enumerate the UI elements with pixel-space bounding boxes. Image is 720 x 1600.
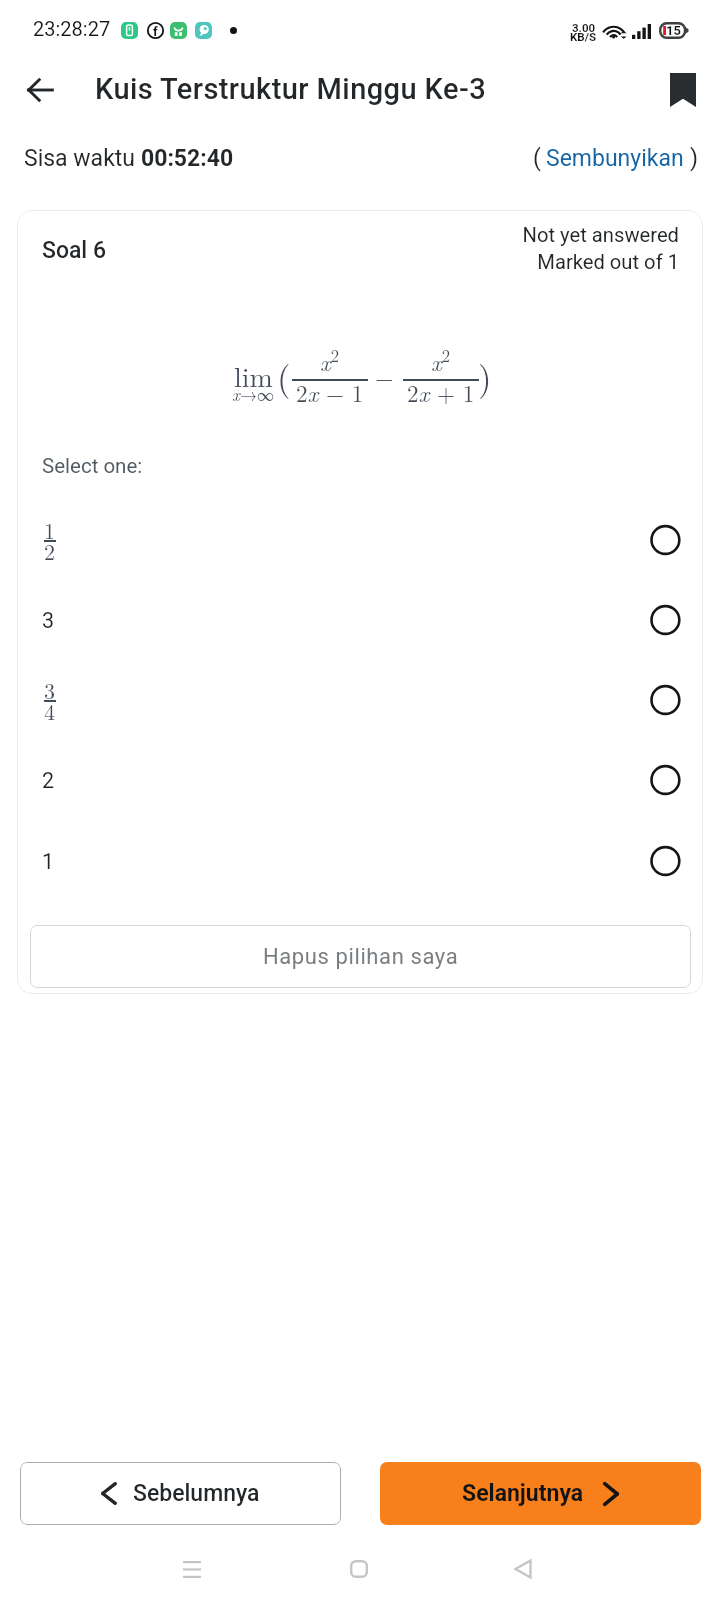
staticText: 3 <box>44 674 56 705</box>
staticText: Sebelumnya <box>133 1480 260 1507</box>
staticText: 2x + 1 <box>407 376 475 409</box>
button[interactable]: Sembunyikan <box>541 145 690 172</box>
staticText: 23:28:27 <box>33 17 111 40</box>
staticText: Selanjutnya <box>462 1480 584 1507</box>
button[interactable]: Bookmark <box>655 62 711 118</box>
staticText: ( <box>533 145 541 172</box>
staticText: 3.00 <box>572 21 596 34</box>
staticText: x2 <box>320 343 340 378</box>
staticText: f <box>153 24 158 39</box>
button[interactable]: Sebelumnya <box>20 1462 341 1525</box>
button[interactable]: 2 <box>17 740 703 820</box>
button[interactable]: 1 <box>17 821 703 901</box>
staticText: x→∞ <box>232 382 274 406</box>
button[interactable]: Back <box>12 62 68 118</box>
button[interactable]: Home <box>319 1529 399 1600</box>
button[interactable]: 1 <box>17 500 703 580</box>
staticText: Sisa waktu <box>24 145 141 172</box>
staticText: ) <box>690 145 699 172</box>
staticText: 3 <box>42 608 55 633</box>
staticText: 15 <box>666 23 681 38</box>
staticText: 1 <box>42 849 55 874</box>
staticText: Not yet answered Marked out of 1 <box>522 223 679 274</box>
staticText: 2 <box>42 768 55 793</box>
button[interactable]: 3 <box>17 660 703 740</box>
staticText: Select one: <box>42 454 143 478</box>
staticText: KB/S <box>570 30 596 43</box>
staticText: 00:52:40 <box>141 145 234 172</box>
staticText: 4 <box>44 695 56 726</box>
button[interactable]: Back <box>483 1529 563 1600</box>
staticText: Sembunyikan <box>546 145 684 172</box>
staticText: Soal 6 <box>42 237 107 264</box>
staticText: ) <box>478 351 492 401</box>
staticText: lim <box>234 355 273 395</box>
staticText: ( <box>277 351 291 401</box>
button[interactable]: Hapus pilihan saya <box>30 925 691 988</box>
staticText: 2 <box>44 535 56 566</box>
staticText: x2 <box>431 343 451 378</box>
button[interactable]: Selanjutnya <box>380 1462 701 1525</box>
button[interactable]: 3 <box>17 580 703 660</box>
staticText: 1 <box>44 514 56 545</box>
button[interactable]: Recent apps <box>152 1529 232 1600</box>
staticText: Kuis Terstruktur Minggu Ke-3 <box>95 72 487 106</box>
staticText: Hapus pilihan saya <box>263 944 459 970</box>
staticText: 2x − 1 <box>296 376 364 409</box>
staticText: − <box>375 360 394 394</box>
